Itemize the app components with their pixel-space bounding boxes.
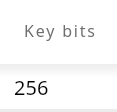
staticText: Key bits [24,20,97,42]
staticText: 256 [14,74,49,101]
button[interactable]: 256 [0,78,117,109]
